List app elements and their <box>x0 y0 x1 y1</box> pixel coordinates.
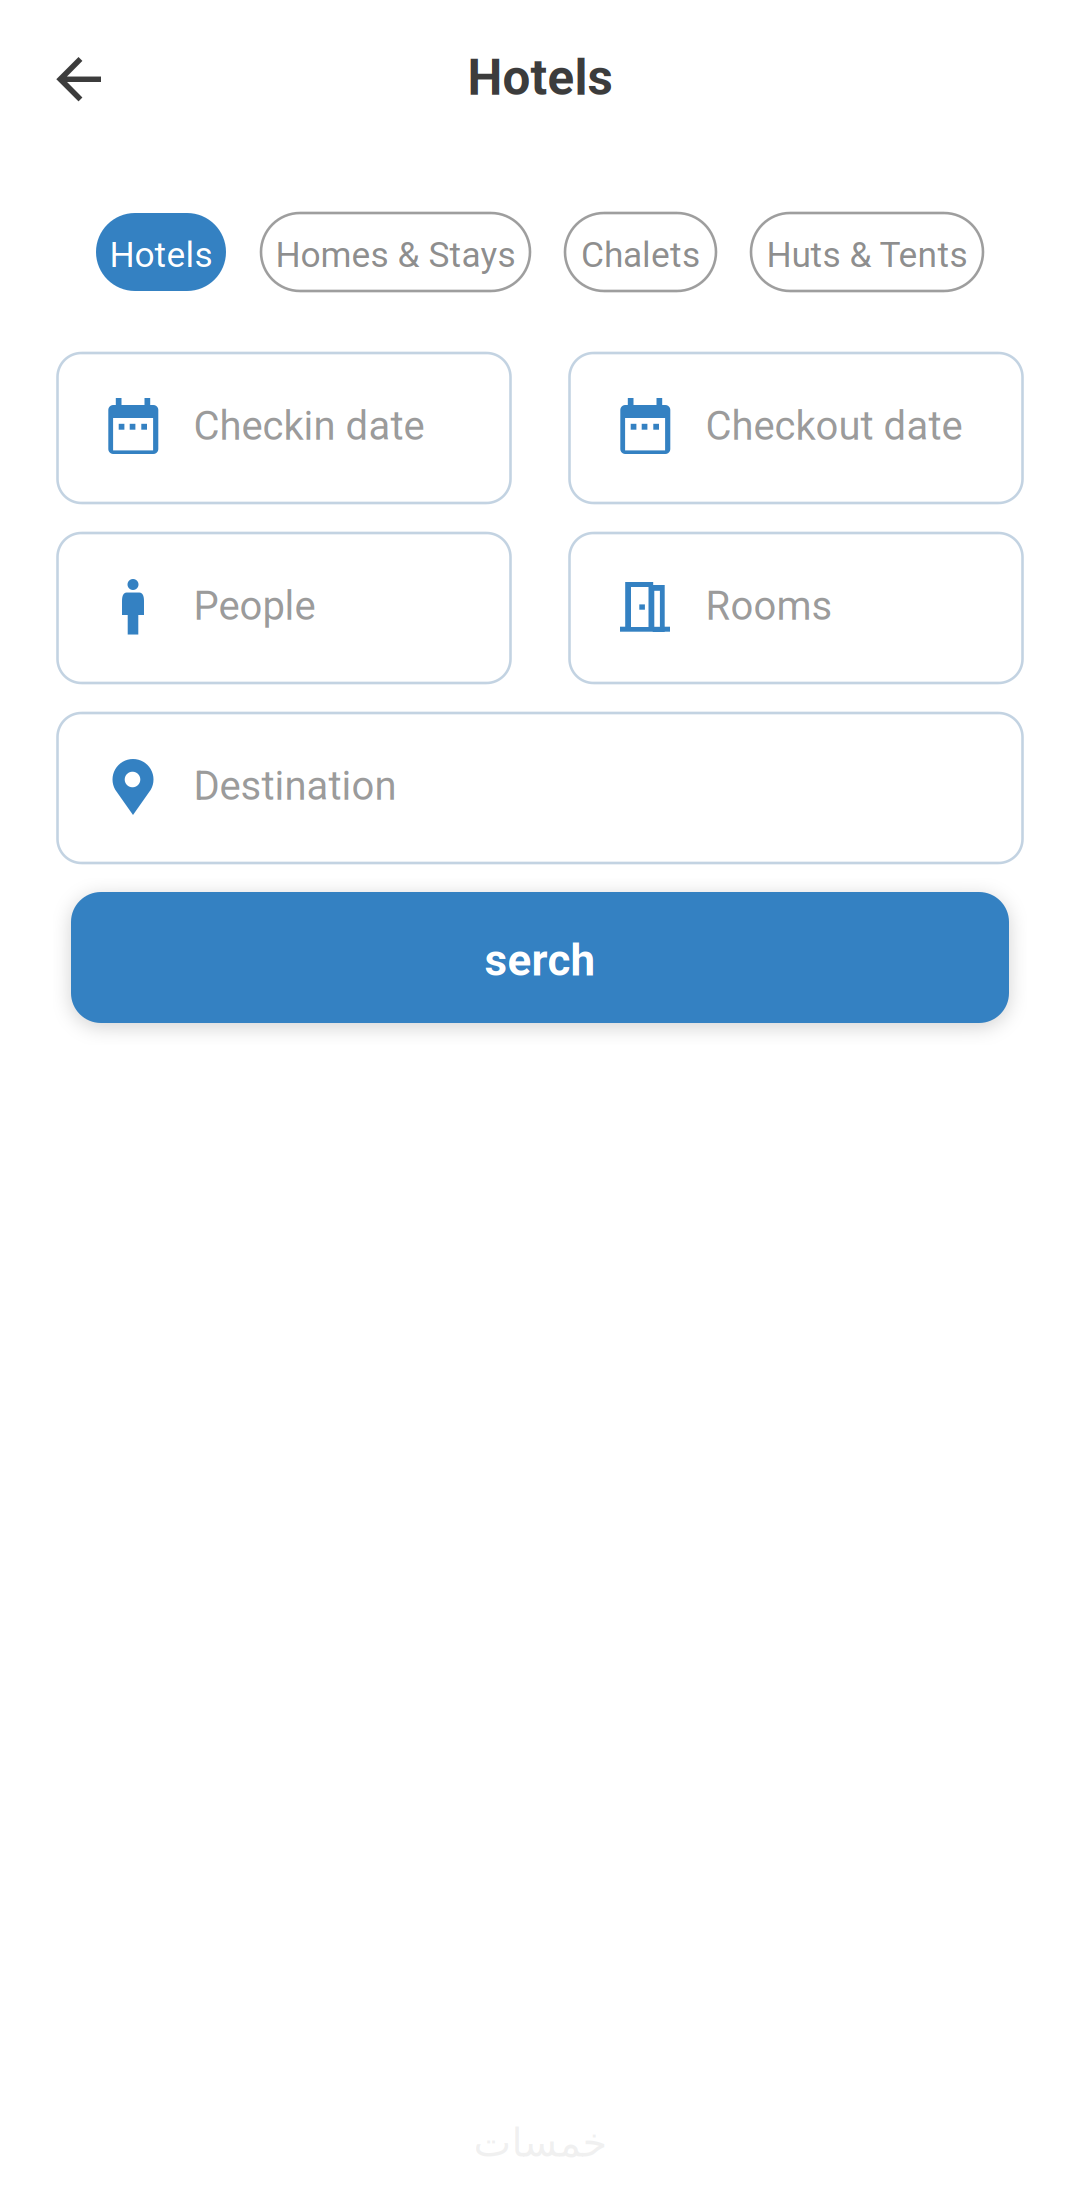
button[interactable]: Checkin date <box>57 353 510 503</box>
button[interactable]: People <box>57 533 510 683</box>
button[interactable]: Hotels <box>96 213 226 291</box>
staticText: Huts & Tents <box>766 234 967 276</box>
staticText: Checkin date <box>193 403 424 449</box>
staticText: Destination <box>193 763 396 809</box>
button[interactable]: Checkout date <box>569 353 1022 503</box>
staticText: Checkout date <box>705 403 962 449</box>
button[interactable]: Chalets <box>565 213 716 291</box>
staticText: Rooms <box>705 583 832 629</box>
staticText: People <box>193 583 315 629</box>
button[interactable]: Homes & Stays <box>261 213 530 291</box>
button[interactable]: serch <box>71 892 1009 1023</box>
staticText: Hotels <box>467 49 612 107</box>
button[interactable]: Destination <box>57 713 1022 863</box>
staticText: Chalets <box>581 234 700 276</box>
staticText: serch <box>484 935 595 986</box>
staticText: خمسات <box>473 2119 607 2166</box>
staticText: Homes & Stays <box>275 234 515 276</box>
button[interactable]: Rooms <box>569 533 1022 683</box>
staticText: Hotels <box>109 234 212 276</box>
button[interactable]: Back <box>56 57 101 101</box>
button[interactable]: Huts & Tents <box>751 213 983 291</box>
